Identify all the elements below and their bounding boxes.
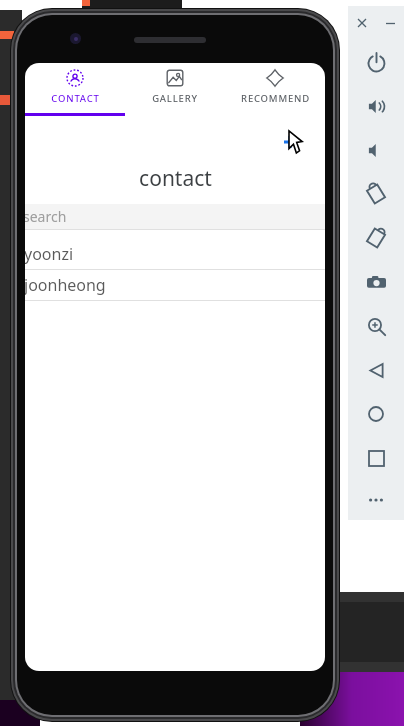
button[interactable]: More bbox=[348, 480, 404, 520]
button[interactable]: Overview bbox=[348, 436, 404, 480]
button[interactable]: Back bbox=[348, 348, 404, 392]
button[interactable]: Zoom bbox=[348, 304, 404, 348]
button[interactable]: Home bbox=[348, 392, 404, 436]
button[interactable]: CONTACT bbox=[25, 63, 125, 113]
staticText: GALLERY bbox=[152, 92, 198, 105]
staticText: RECOMMEND bbox=[241, 92, 310, 105]
button[interactable]: Power bbox=[348, 40, 404, 84]
button[interactable]: Minimize bbox=[381, 14, 399, 32]
button[interactable]: GALLERY bbox=[125, 63, 225, 113]
button[interactable]: search bbox=[25, 204, 325, 229]
staticText: joonheong bbox=[25, 274, 106, 296]
button[interactable]: Add contact bbox=[259, 125, 321, 158]
button[interactable]: Rotate left bbox=[348, 172, 404, 216]
staticText: search bbox=[25, 207, 67, 226]
button[interactable]: joonheong bbox=[25, 270, 325, 301]
button[interactable]: RECOMMEND bbox=[225, 63, 325, 113]
button[interactable]: Close bbox=[353, 14, 371, 32]
staticText: CONTACT bbox=[51, 92, 100, 105]
staticText: yoonzi bbox=[25, 243, 74, 265]
button[interactable]: yoonzi bbox=[25, 239, 325, 270]
button[interactable]: Volume up bbox=[348, 84, 404, 128]
button[interactable]: Screenshot bbox=[348, 260, 404, 304]
button[interactable]: Rotate right bbox=[348, 216, 404, 260]
staticText: contact bbox=[139, 164, 212, 193]
button[interactable]: Volume down bbox=[348, 128, 404, 172]
